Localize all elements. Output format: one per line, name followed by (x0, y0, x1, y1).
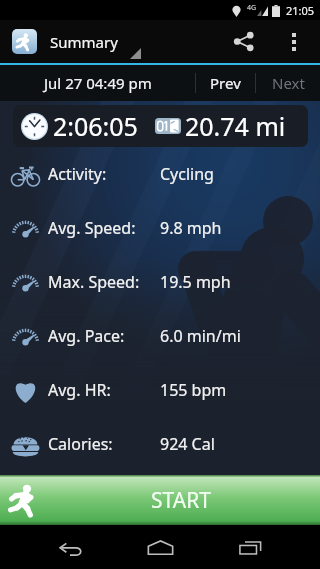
button[interactable]: Recent apps (205, 525, 295, 569)
staticText: START (151, 486, 211, 515)
button[interactable]: Max. Speed: (0, 255, 320, 309)
button[interactable]: Calories: (0, 417, 320, 471)
staticText: 2:06:05 (53, 109, 138, 143)
staticText: 19.5 mph (160, 271, 231, 293)
button[interactable]: Jul 27 04:49 pm (0, 65, 195, 101)
button[interactable]: Prev (196, 65, 255, 101)
staticText: Avg. Pace: (48, 325, 125, 347)
staticText: Cycling (160, 163, 214, 185)
staticText: 6.0 min/mi (160, 325, 241, 347)
staticText: Next (272, 73, 305, 93)
staticText: 9.8 mph (160, 217, 222, 239)
staticText: Calories: (48, 433, 113, 455)
staticText: 4G (247, 3, 257, 13)
staticText: Activity: (48, 163, 107, 185)
staticText: 924 Cal (160, 433, 215, 455)
button[interactable]: Share (220, 20, 267, 63)
staticText: Prev (210, 73, 241, 93)
button[interactable]: Avg. HR: (0, 363, 320, 417)
button[interactable]: Summary (0, 20, 220, 63)
button[interactable]: Activity: (0, 147, 320, 201)
staticText: Max. Speed: (48, 271, 140, 293)
staticText: 20.74 mi (185, 109, 286, 143)
button[interactable]: Avg. Pace: (0, 309, 320, 363)
staticText: 21:05 (286, 3, 315, 18)
staticText: Summary (50, 32, 118, 52)
button[interactable]: More options (267, 20, 320, 63)
staticText: 155 bpm (160, 379, 227, 401)
button[interactable]: Next (256, 65, 320, 101)
button[interactable]: START (0, 475, 320, 525)
button[interactable]: Back (25, 525, 115, 569)
button[interactable]: Avg. Speed: (0, 201, 320, 255)
button[interactable]: Home (115, 525, 205, 569)
staticText: Avg. HR: (48, 379, 111, 401)
staticText: Jul 27 04:49 pm (44, 73, 152, 93)
staticText: Avg. Speed: (48, 217, 136, 239)
